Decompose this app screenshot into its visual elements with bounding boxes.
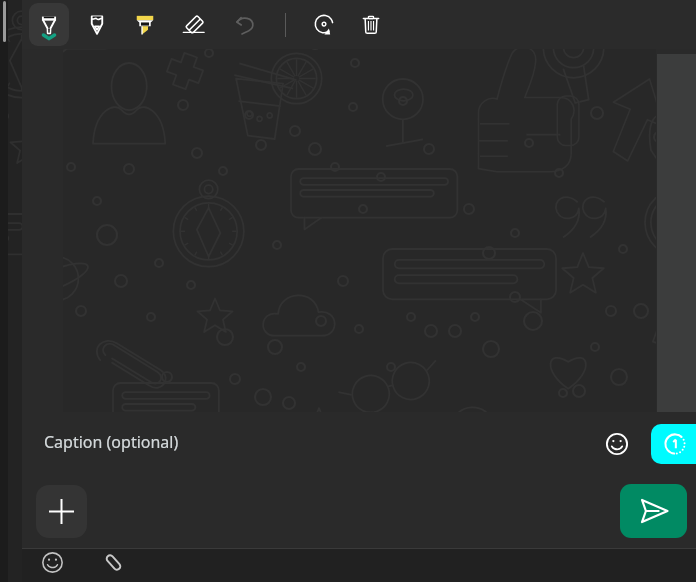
button[interactable]: Eraser	[174, 3, 214, 46]
staticText: Caption (optional)	[44, 431, 179, 453]
button[interactable]: Send	[620, 484, 687, 538]
button[interactable]: Pen	[29, 3, 69, 46]
button[interactable]: Attach	[97, 546, 129, 578]
button[interactable]: Undo	[225, 3, 265, 46]
button[interactable]: Pencil	[77, 3, 117, 46]
button[interactable]: View once	[651, 424, 696, 464]
button[interactable]: Emoji keyboard	[36, 546, 68, 578]
button[interactable]: Add media	[36, 485, 87, 538]
button[interactable]: Emoji	[600, 427, 634, 461]
button[interactable]: Rotate	[304, 3, 344, 46]
button[interactable]: Highlighter	[125, 3, 165, 46]
button[interactable]: Delete	[351, 3, 391, 46]
